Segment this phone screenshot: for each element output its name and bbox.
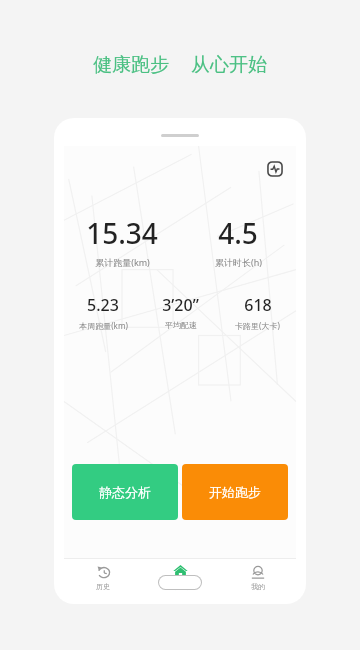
staticText: 卡路里(大卡): [235, 320, 280, 331]
staticText: 健康跑步: [93, 53, 169, 77]
staticText: 历史: [96, 582, 110, 591]
staticText: 累计跑量(km): [95, 256, 150, 268]
staticText: 15.34: [86, 214, 158, 252]
staticText: 从心开始: [191, 53, 267, 77]
staticText: 3’20”: [162, 294, 199, 316]
staticText: 我的: [251, 582, 265, 591]
staticText: 累计时长(h): [215, 256, 262, 268]
button[interactable]: 首页: [142, 558, 219, 596]
staticText: 5.23: [87, 294, 119, 316]
button[interactable]: 我的: [219, 558, 296, 596]
staticText: 开始跑步: [209, 484, 261, 500]
button[interactable]: 开始跑步: [182, 464, 288, 520]
staticText: 4.5: [218, 214, 258, 252]
button[interactable]: 静态分析: [72, 464, 178, 520]
button[interactable]: Heart rate: [264, 158, 286, 180]
button[interactable]: Home: [158, 575, 202, 590]
staticText: 本周跑量(km): [79, 320, 128, 331]
staticText: 首页: [174, 582, 188, 591]
staticText: 静态分析: [99, 484, 151, 500]
staticText: 618: [244, 294, 272, 316]
button[interactable]: 历史: [64, 558, 142, 596]
staticText: 平均配速: [165, 320, 197, 330]
